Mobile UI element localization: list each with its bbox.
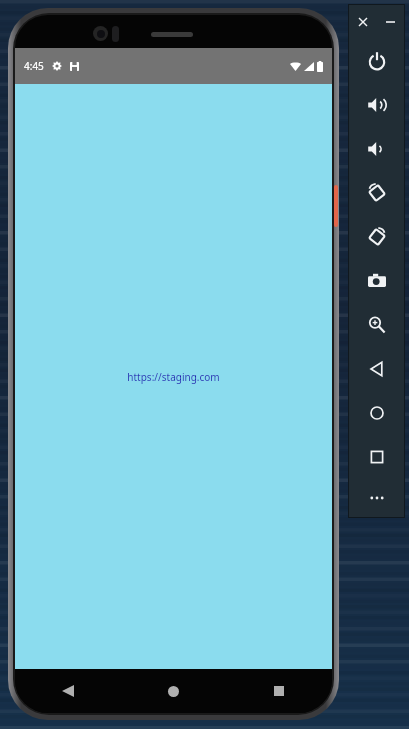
button[interactable]: Volume up bbox=[349, 83, 404, 127]
button[interactable]: Take screenshot bbox=[349, 259, 404, 303]
staticText: https://staging.com bbox=[127, 370, 220, 384]
button[interactable]: Home bbox=[120, 669, 226, 713]
button[interactable]: Back bbox=[349, 347, 404, 391]
button[interactable]: Overview bbox=[349, 435, 404, 479]
button[interactable]: Volume down bbox=[349, 127, 404, 171]
button[interactable]: Rotate left bbox=[349, 171, 404, 215]
button[interactable]: Minimize bbox=[376, 5, 404, 39]
button[interactable]: Zoom bbox=[349, 303, 404, 347]
button[interactable]: https://staging.com bbox=[121, 367, 226, 387]
button[interactable]: Power bbox=[349, 39, 404, 83]
staticText: 4:45 bbox=[24, 59, 44, 73]
button[interactable]: Recent apps bbox=[226, 669, 332, 713]
other: Power button bbox=[334, 185, 338, 227]
button[interactable]: Rotate right bbox=[349, 215, 404, 259]
button[interactable]: Close bbox=[349, 5, 376, 39]
button[interactable]: Home bbox=[349, 391, 404, 435]
button[interactable]: More bbox=[349, 479, 404, 517]
button[interactable]: Back bbox=[15, 669, 120, 713]
